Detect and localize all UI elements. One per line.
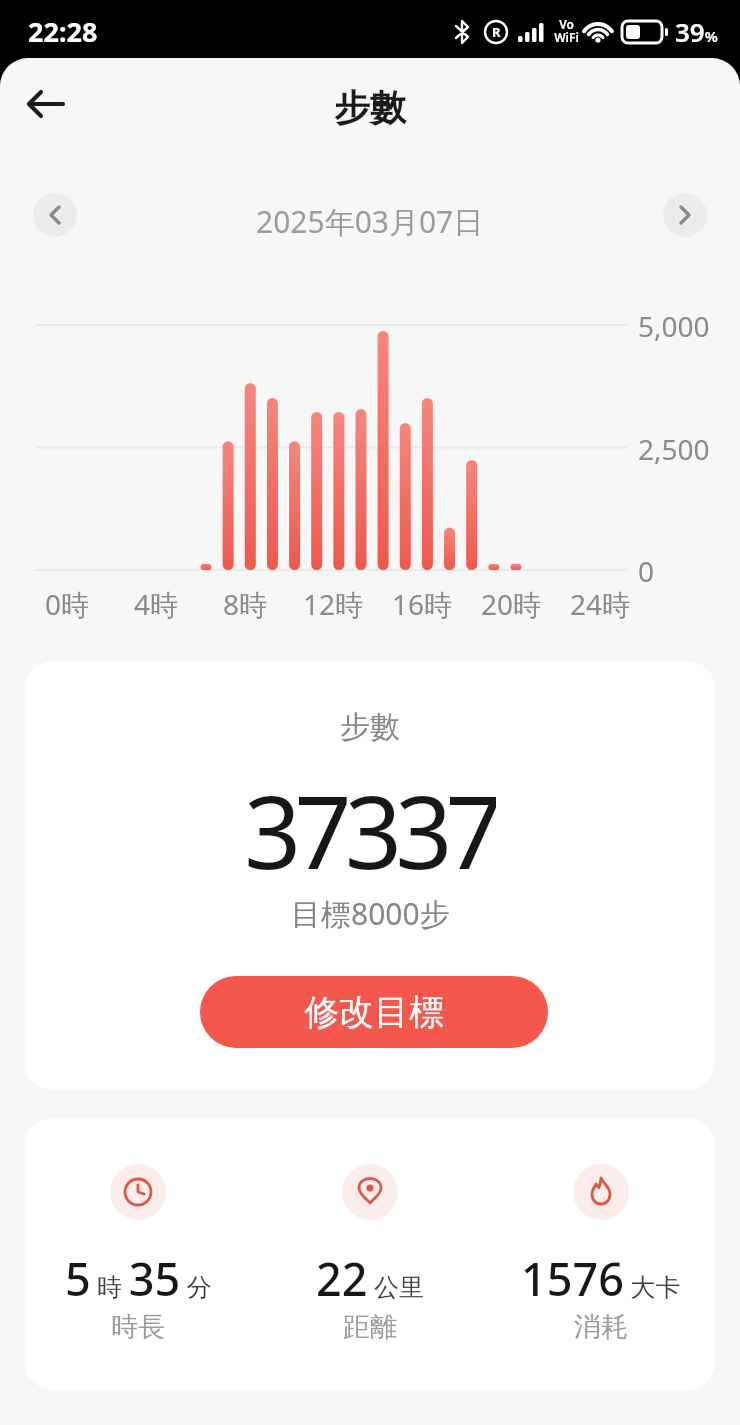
staticText: 5 時 35 分 [65, 1248, 212, 1309]
button[interactable] [663, 193, 707, 237]
staticText: 5,000 [638, 307, 710, 343]
staticText: 時長 [111, 1310, 165, 1344]
staticText: 1576 大卡 [521, 1248, 681, 1309]
staticText: Vo WiFi [554, 16, 579, 46]
staticText: 目標8000步 [291, 893, 450, 934]
button[interactable]: 修改目標 [200, 976, 548, 1048]
staticText: 22 公里 [316, 1248, 424, 1309]
staticText: 12時 [303, 585, 364, 623]
staticText: 8時 [223, 585, 268, 623]
staticText: 16時 [392, 585, 453, 623]
button[interactable] [16, 74, 76, 134]
staticText: 22:28 [28, 13, 98, 50]
staticText: 2025年03月07日 [256, 201, 484, 242]
staticText: 2,500 [638, 430, 710, 466]
staticText: 消耗 [574, 1310, 628, 1344]
staticText: 37337 [244, 762, 496, 892]
staticText: 39% [675, 14, 718, 49]
staticText: 步數 [340, 708, 400, 746]
button[interactable] [33, 193, 77, 237]
staticText: 20時 [481, 585, 542, 623]
staticText: R [492, 23, 501, 41]
staticText: 0時 [45, 585, 90, 623]
staticText: 修改目標 [304, 990, 444, 1034]
staticText: 4時 [134, 585, 179, 623]
staticText: 0 [638, 552, 655, 588]
staticText: 24時 [570, 585, 631, 623]
staticText: 步數 [334, 85, 406, 130]
staticText: 距離 [343, 1310, 397, 1344]
